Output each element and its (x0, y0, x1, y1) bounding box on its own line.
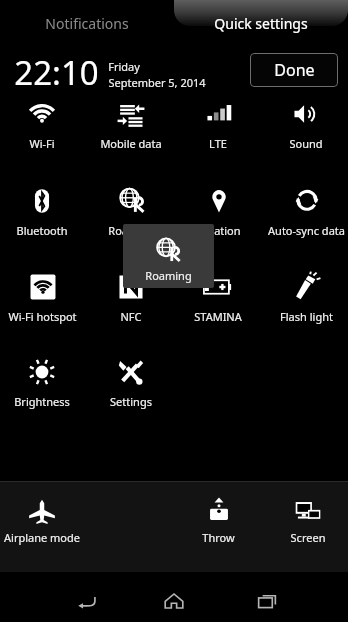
staticText: Screen mirroring (265, 530, 348, 545)
button[interactable]: NFC (88, 271, 174, 333)
staticText: Flash light (280, 309, 333, 324)
button[interactable]: LTE (175, 98, 261, 160)
staticText: Brightness (14, 394, 70, 409)
button[interactable]: Mobile data (88, 98, 174, 160)
button[interactable]: Flash light (263, 271, 348, 333)
button[interactable]: Wi-Fi (0, 98, 85, 160)
staticText: 22:10 (14, 50, 99, 95)
staticText: Settings (110, 394, 152, 409)
button[interactable]: Recents (241, 578, 293, 622)
staticText: Notifications (45, 14, 129, 33)
staticText: STAMINA (194, 309, 242, 324)
button[interactable]: Location (175, 185, 261, 247)
staticText: NFC (120, 309, 142, 324)
button[interactable]: Brightness (0, 356, 85, 418)
staticText: Roaming (145, 268, 192, 283)
button[interactable]: Home (148, 578, 200, 622)
button[interactable]: Settings (88, 356, 174, 418)
button[interactable]: Wi-Fi hotspot (0, 271, 85, 333)
staticText: September 5, 2014 (108, 75, 206, 90)
staticText: Sound (289, 136, 323, 151)
staticText: Mobile data (100, 136, 162, 151)
staticText: Auto-sync data (268, 223, 345, 238)
button[interactable]: Roaming (88, 185, 174, 247)
staticText: Roaming (108, 223, 155, 238)
staticText: Location (196, 223, 241, 238)
staticText: LTE (209, 136, 227, 151)
button[interactable]: Auto-sync data (263, 185, 348, 247)
staticText: Friday (108, 59, 140, 74)
staticText: Throw (202, 530, 235, 545)
button[interactable]: Sound (263, 98, 348, 160)
button[interactable]: Throw (175, 497, 261, 551)
button[interactable]: Notifications (0, 6, 174, 40)
button[interactable]: Airplane mode (0, 497, 85, 551)
staticText: Quick settings (214, 14, 308, 33)
button[interactable]: Back (61, 578, 113, 622)
staticText: Bluetooth (16, 223, 68, 238)
button[interactable]: STAMINA (175, 271, 261, 333)
button[interactable]: Quick settings (174, 6, 348, 40)
button[interactable]: Bluetooth (0, 185, 85, 247)
button[interactable]: Screen mirroring (265, 497, 348, 551)
staticText: Wi-Fi hotspot (8, 309, 77, 324)
staticText: Wi-Fi (29, 136, 55, 151)
button[interactable]: Done (250, 53, 338, 87)
staticText: Airplane mode (4, 530, 80, 545)
staticText: Done (274, 59, 315, 81)
